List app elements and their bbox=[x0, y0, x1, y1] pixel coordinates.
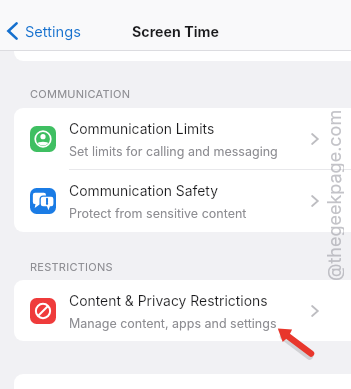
staticText: COMMUNICATION bbox=[30, 87, 131, 100]
button[interactable]: Content & Privacy Restrictions bbox=[14, 280, 351, 341]
staticText: Set limits for calling and messaging bbox=[69, 144, 278, 159]
other: Back bbox=[7, 22, 18, 40]
staticText: Communication Safety bbox=[69, 183, 218, 200]
staticText: @thegeekpage.com bbox=[324, 109, 344, 281]
staticText: RESTRICTIONS bbox=[30, 260, 113, 273]
button[interactable]: Back bbox=[0, 0, 92, 51]
staticText: Settings bbox=[25, 23, 81, 41]
staticText: Screen Time bbox=[132, 23, 219, 40]
button[interactable]: Communication Safety bbox=[14, 170, 351, 232]
staticText: Manage content, apps and settings bbox=[69, 316, 277, 331]
staticText: Content & Privacy Restrictions bbox=[69, 293, 268, 310]
button[interactable]: Communication Limits bbox=[14, 108, 351, 170]
staticText: Protect from sensitive content bbox=[69, 206, 247, 221]
staticText: Communication Limits bbox=[69, 121, 215, 138]
